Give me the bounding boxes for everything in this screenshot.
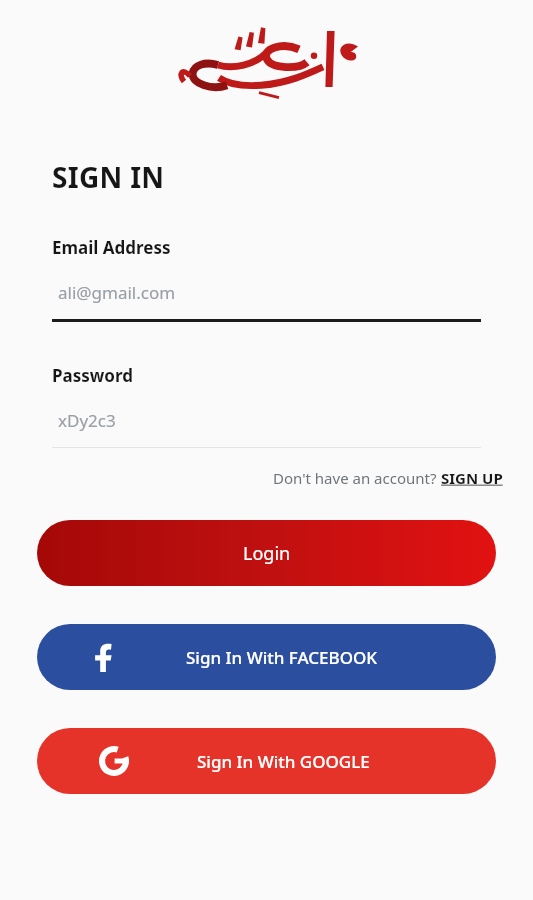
staticText: SIGN IN (52, 158, 165, 196)
staticText: Email Address (52, 236, 171, 259)
button[interactable]: Login (37, 520, 496, 586)
staticText: Sign In With GOOGLE (197, 750, 370, 773)
staticText: Don't have an account? (273, 468, 441, 488)
staticText: SIGN UP (441, 468, 503, 488)
staticText: Password (52, 364, 133, 387)
button[interactable]: Sign In With GOOGLE (37, 728, 496, 794)
staticText: Sign In With FACEBOOK (186, 646, 378, 669)
staticText: xDy2c3 (58, 409, 116, 432)
other: Farsh e Aza logo (167, 19, 367, 111)
button[interactable]: xDy2c3 (52, 407, 481, 433)
button[interactable]: ali@gmail.com (52, 279, 481, 305)
button[interactable]: SIGN UP (441, 468, 503, 488)
staticText: Login (243, 541, 291, 566)
button[interactable]: Sign In With FACEBOOK (37, 624, 496, 690)
staticText: ali@gmail.com (58, 281, 176, 304)
